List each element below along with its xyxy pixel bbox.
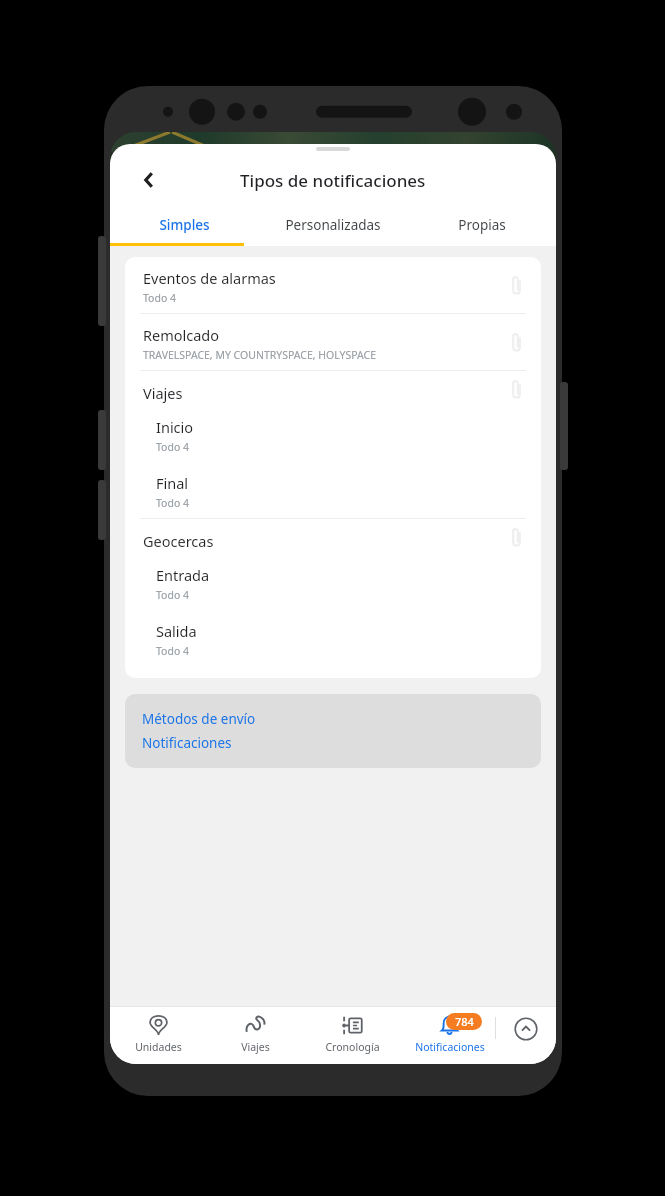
button[interactable]: Geocercas	[125, 519, 541, 554]
button[interactable]: Salida	[125, 610, 541, 666]
button[interactable]: Remolcado	[125, 314, 541, 370]
staticText: Tipos de notificaciones	[240, 169, 426, 192]
staticText: Geocercas	[143, 531, 214, 551]
staticText: Todo 4	[156, 588, 190, 602]
button[interactable]: Back	[128, 159, 170, 201]
staticText: Viajes	[143, 383, 183, 403]
button[interactable]: Final	[125, 462, 541, 518]
staticText: Eventos de alarmas	[143, 268, 276, 288]
button[interactable]: Eventos de alarmas	[125, 257, 541, 313]
staticText: Todo 4	[143, 291, 177, 305]
staticText: 784	[455, 1014, 474, 1029]
staticText: Todo 4	[156, 496, 190, 510]
button[interactable]: Simples	[110, 204, 258, 246]
button[interactable]: Notificaciones	[142, 734, 232, 752]
button[interactable]: Entrada	[125, 554, 541, 610]
button[interactable]: Viajes	[125, 371, 541, 406]
staticText: Propias	[458, 216, 506, 234]
button[interactable]: Notificaciones	[401, 1006, 498, 1064]
button[interactable]: Inicio	[125, 406, 541, 462]
staticText: Simples	[159, 216, 210, 234]
staticText: Final	[156, 473, 189, 493]
staticText: Notificaciones	[415, 1040, 485, 1054]
staticText: Inicio	[156, 417, 194, 437]
button[interactable]: Cronología	[304, 1006, 401, 1064]
staticText: Todo 4	[156, 644, 190, 658]
button[interactable]: Propias	[407, 204, 556, 246]
staticText: Salida	[156, 621, 197, 641]
staticText: Todo 4	[156, 440, 190, 454]
staticText: TRAVELSPACE, MY COUNTRYSPACE, HOLYSPACE	[143, 348, 376, 362]
button[interactable]: Expand	[505, 1008, 547, 1050]
staticText: Remolcado	[143, 325, 220, 345]
button[interactable]: Métodos de envío	[142, 710, 256, 728]
button[interactable]: Viajes	[207, 1006, 304, 1064]
button[interactable]: Unidades	[110, 1006, 207, 1064]
staticText: Cronología	[325, 1040, 380, 1054]
button[interactable]: Personalizadas	[258, 204, 407, 246]
staticText: Entrada	[156, 565, 210, 585]
staticText: Personalizadas	[285, 216, 381, 234]
staticText: Unidades	[135, 1040, 182, 1054]
staticText: Viajes	[241, 1040, 270, 1054]
